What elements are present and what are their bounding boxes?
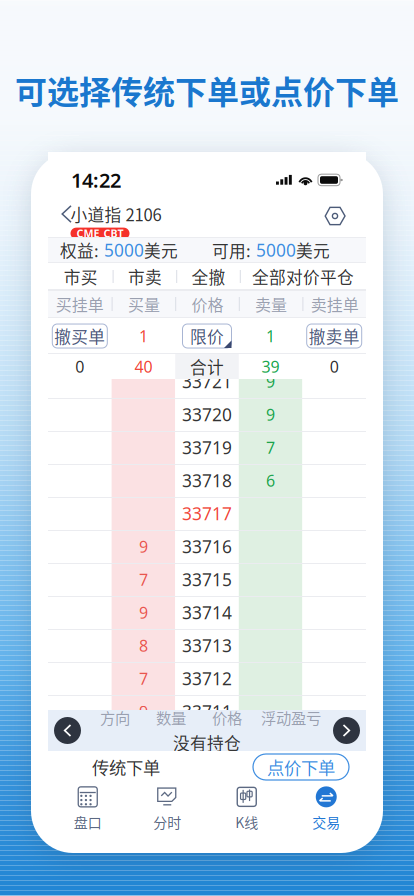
staticText: 数量	[156, 706, 186, 728]
staticText: 传统下单	[92, 754, 160, 780]
staticText: 7	[139, 668, 148, 689]
staticText: 小道指 2106	[70, 202, 161, 226]
button[interactable]: 设置	[318, 199, 352, 233]
staticText: 9	[139, 701, 148, 722]
staticText: 1	[266, 325, 275, 347]
staticText: 美元	[144, 238, 178, 262]
staticText: 市卖	[128, 264, 162, 288]
staticText: 33720	[182, 403, 232, 426]
staticText: 7	[266, 437, 275, 458]
staticText: 交易	[312, 812, 340, 832]
staticText: 33711	[182, 700, 232, 723]
staticText: 8	[139, 635, 148, 656]
button[interactable]: 下一页	[333, 717, 360, 744]
staticText: 33717	[182, 502, 232, 525]
staticText: 0	[75, 356, 84, 377]
staticText: 卖挂单	[311, 292, 359, 316]
staticText: 0	[330, 356, 339, 377]
staticText: 40	[134, 356, 152, 377]
staticText: 价格	[191, 292, 223, 316]
button[interactable]: 返回	[61, 199, 87, 229]
staticText: 买挂单	[56, 292, 104, 316]
staticText: 全撤	[191, 264, 225, 288]
staticText: 33721	[182, 370, 232, 393]
button[interactable]: 撤卖单	[302, 318, 366, 354]
staticText: 9	[139, 536, 148, 557]
staticText: 5000	[99, 238, 144, 261]
staticText: 1	[139, 325, 148, 347]
staticText: 33719	[182, 436, 232, 459]
button[interactable]: 点价下单	[253, 754, 349, 780]
staticText: 浮动盈亏	[261, 706, 321, 728]
button[interactable]: 全部对价平仓	[241, 263, 365, 290]
button[interactable]: 交易	[286, 783, 366, 835]
staticText: 5000	[251, 238, 296, 261]
staticText: 分时	[153, 812, 181, 832]
button[interactable]: K线	[207, 783, 286, 835]
staticText: 点价下单	[267, 754, 335, 780]
staticText: 美元	[296, 238, 330, 262]
button[interactable]: 上一页	[54, 717, 81, 744]
staticText: K线	[235, 812, 258, 832]
staticText: 33718	[182, 469, 232, 492]
staticText: 撤卖单	[309, 324, 360, 348]
staticText: 33714	[182, 601, 232, 624]
staticText: 33712	[182, 667, 232, 690]
staticText: 33716	[182, 535, 232, 558]
staticText: 市买	[64, 264, 98, 288]
button[interactable]: 限价	[175, 318, 239, 354]
button[interactable]: 盘口	[48, 783, 127, 835]
staticText: 限价	[190, 324, 224, 348]
staticText: 7	[139, 569, 148, 590]
staticText: 9	[139, 602, 148, 623]
button[interactable]: 全撤	[177, 263, 240, 290]
staticText: 9	[266, 371, 275, 392]
staticText: 价格	[212, 706, 242, 728]
staticText: 盘口	[74, 812, 102, 832]
staticText: 33713	[182, 634, 232, 657]
staticText: 可选择传统下单或点价下单	[15, 67, 399, 113]
staticText: 权益:	[60, 238, 99, 262]
button[interactable]: 分时	[127, 783, 207, 835]
staticText: 14:22	[71, 167, 121, 193]
staticText: 方向	[100, 706, 130, 728]
staticText: 没有持仓	[173, 730, 241, 755]
button[interactable]: 市卖	[114, 263, 176, 290]
staticText: 撤买单	[54, 324, 105, 348]
staticText: 6	[266, 470, 275, 491]
button[interactable]: 市买	[49, 263, 113, 290]
staticText: 全部对价平仓	[252, 264, 354, 288]
staticText: 卖量	[255, 292, 287, 316]
staticText: 买量	[128, 292, 160, 316]
staticText: CME_CBT	[76, 226, 123, 240]
staticText: 39	[262, 356, 280, 377]
staticText: 33715	[182, 568, 232, 591]
staticText: 可用:	[212, 238, 251, 262]
staticText: 9	[266, 404, 275, 425]
button[interactable]: 撤买单	[48, 318, 112, 354]
button[interactable]: 传统下单	[65, 754, 187, 780]
staticText: 合计	[190, 354, 224, 378]
